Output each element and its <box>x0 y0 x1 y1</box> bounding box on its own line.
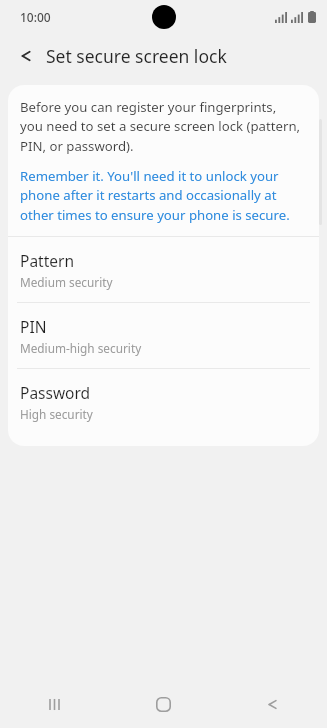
button[interactable]: Navigate up <box>8 38 44 74</box>
staticText: Medium security <box>20 274 113 290</box>
button[interactable]: Back <box>218 680 327 728</box>
staticText: Medium-high security <box>20 340 142 356</box>
staticText: Password <box>20 382 91 403</box>
button[interactable]: Pattern <box>8 237 319 302</box>
staticText: Set secure screen lock <box>46 44 227 68</box>
staticText: Pattern <box>20 250 74 271</box>
staticText: Remember it. You'll need it to unlock yo… <box>20 167 302 224</box>
button[interactable]: Home <box>109 680 218 728</box>
button[interactable]: Recent apps <box>0 680 109 728</box>
staticText: High security <box>20 406 93 422</box>
button[interactable]: PIN <box>8 303 319 368</box>
button[interactable]: Password <box>8 369 319 434</box>
staticText: 10:00 <box>20 9 51 25</box>
staticText: PIN <box>20 316 47 337</box>
staticText: Before you can register your fingerprint… <box>20 98 302 155</box>
